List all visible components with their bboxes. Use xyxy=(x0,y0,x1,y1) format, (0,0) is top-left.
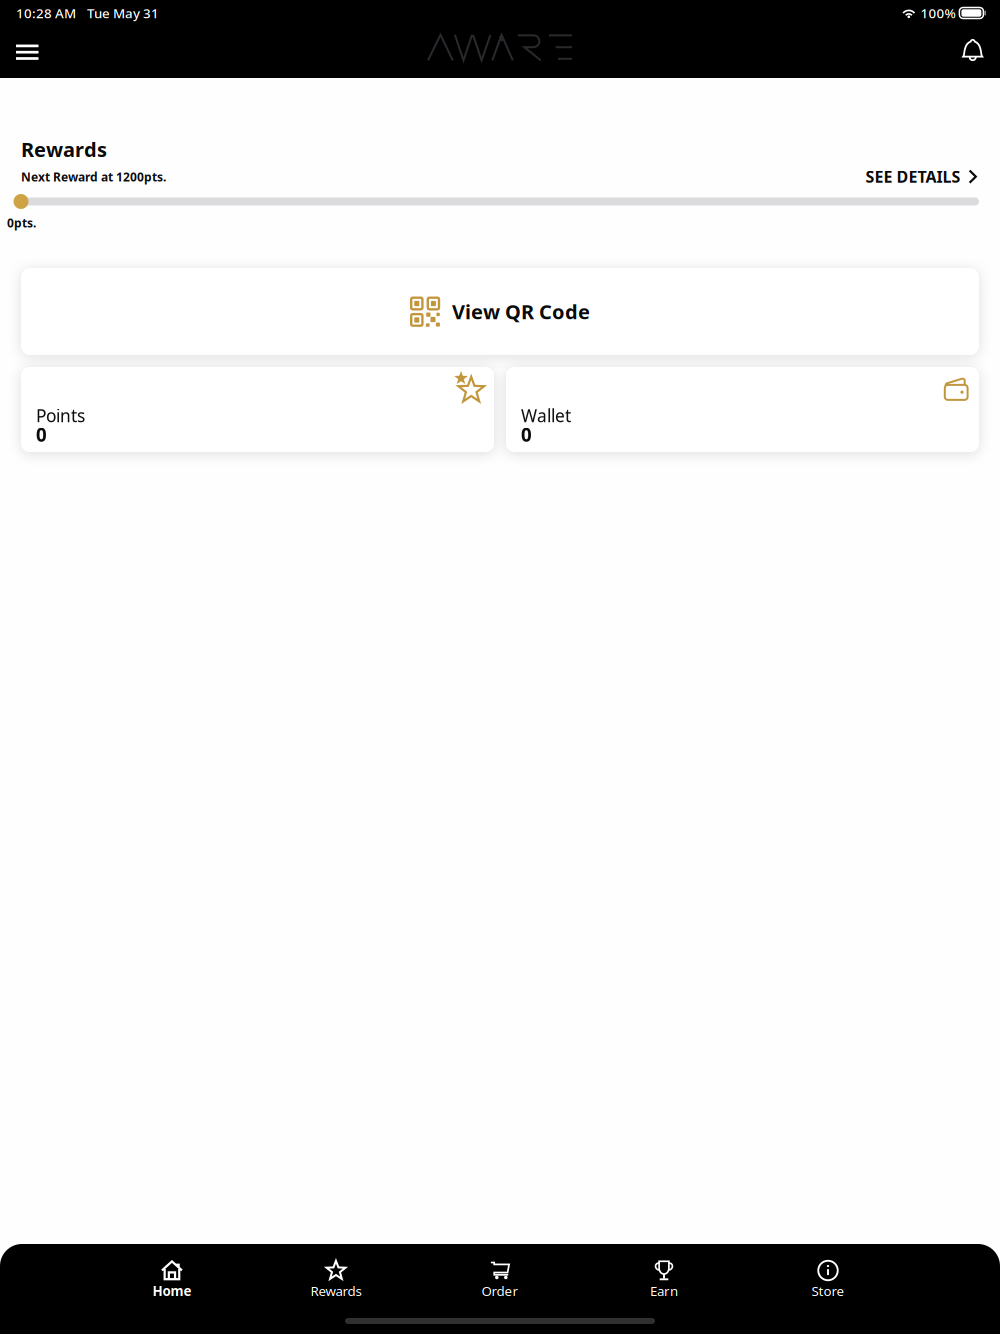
staticText: Points xyxy=(36,404,85,427)
staticText: Tue May 31 xyxy=(87,4,159,22)
staticText: SEE DETAILS xyxy=(865,166,960,187)
staticText: 0 xyxy=(521,422,532,447)
button[interactable]: Menu xyxy=(6,35,49,71)
staticText: View QR Code xyxy=(452,298,590,325)
staticText: Home xyxy=(152,1282,191,1300)
button[interactable]: Order xyxy=(418,1258,582,1302)
staticText: Rewards xyxy=(310,1282,361,1300)
staticText: 0pts. xyxy=(7,215,36,231)
staticText: Wallet xyxy=(521,404,571,427)
button[interactable]: Store xyxy=(746,1258,910,1302)
staticText: 10:28 AM xyxy=(16,4,76,22)
button[interactable]: Points xyxy=(21,367,494,452)
button[interactable]: Earn xyxy=(582,1258,746,1302)
button[interactable]: Home xyxy=(90,1258,254,1302)
staticText: Earn xyxy=(650,1282,678,1300)
staticText: 100% xyxy=(920,4,955,22)
button[interactable]: Notifications xyxy=(954,32,992,68)
button[interactable]: SEE DETAILS xyxy=(865,166,977,187)
button[interactable]: Wallet xyxy=(506,367,979,452)
staticText: Store xyxy=(811,1282,844,1300)
staticText: Order xyxy=(481,1282,518,1300)
staticText: Next Reward at 1200pts. xyxy=(21,169,166,185)
button[interactable]: Rewards xyxy=(254,1258,418,1302)
staticText: Rewards xyxy=(21,136,107,163)
staticText: 0 xyxy=(36,422,47,447)
button[interactable]: View QR Code xyxy=(21,268,979,355)
